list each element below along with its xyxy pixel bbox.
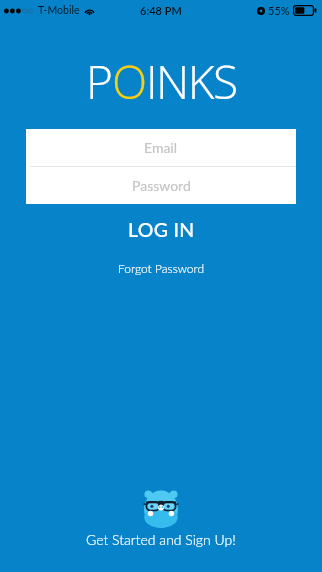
staticText: 55% xyxy=(268,4,290,17)
staticText: 6:48 PM xyxy=(140,4,182,17)
other: Sign up xyxy=(142,488,180,528)
staticText: Forgot Password xyxy=(118,261,205,275)
staticText: Password xyxy=(132,177,191,194)
other: Battery 55 percent xyxy=(293,5,317,16)
staticText: O xyxy=(112,50,146,113)
staticText: INKS xyxy=(146,50,237,113)
other: Wi-Fi xyxy=(84,6,95,15)
staticText: Email xyxy=(144,139,178,156)
staticText: T-Mobile xyxy=(38,4,80,17)
staticText: LOG IN xyxy=(128,218,195,241)
button[interactable]: Password xyxy=(26,167,296,204)
button[interactable]: Forgot Password xyxy=(102,257,221,279)
button[interactable]: LOG IN xyxy=(104,213,219,246)
staticText: P xyxy=(86,50,112,113)
button[interactable]: Email xyxy=(26,129,296,166)
button[interactable]: Sign up xyxy=(64,484,258,554)
staticText: Get Started and Sign Up! xyxy=(86,531,236,548)
